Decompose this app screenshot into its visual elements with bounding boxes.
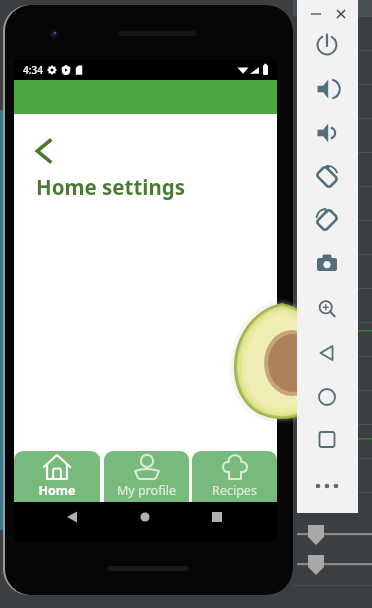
button[interactable]: Back: [31, 138, 57, 164]
staticText: Home: [38, 482, 76, 499]
staticText: My profile: [117, 482, 176, 499]
button[interactable]: Recipes: [192, 451, 277, 502]
staticText: 4:34: [23, 63, 43, 77]
staticText: Recipes: [212, 482, 257, 499]
button[interactable]: Home: [14, 451, 100, 502]
button[interactable]: My profile: [104, 451, 189, 502]
staticText: Home settings: [36, 173, 186, 201]
